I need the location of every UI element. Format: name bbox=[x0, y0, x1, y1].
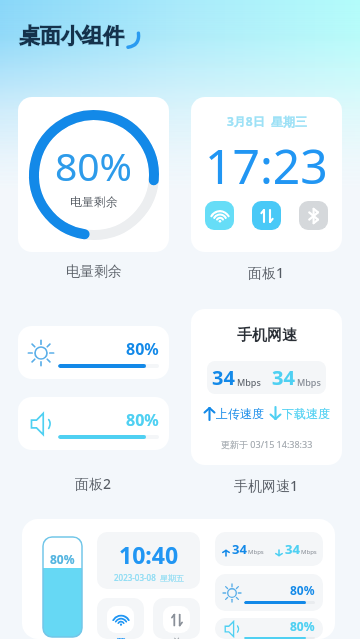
staticText: 80% bbox=[55, 139, 133, 192]
staticText: 3月8日 星期三 bbox=[227, 113, 307, 129]
button[interactable]: 80% bbox=[18, 326, 169, 379]
staticText: 80% bbox=[126, 338, 159, 360]
button[interactable]: 关 bbox=[153, 598, 200, 639]
staticText: 34 bbox=[232, 540, 247, 558]
staticText: 电量剩余 bbox=[66, 263, 122, 281]
button[interactable]: 手机网速 bbox=[191, 309, 342, 465]
staticText: 开 bbox=[116, 636, 126, 639]
button[interactable]: 3月8日 星期三 bbox=[191, 97, 342, 252]
button[interactable]: Bluetooth bbox=[299, 201, 328, 230]
staticText: 80% bbox=[290, 618, 315, 634]
staticText: 34 bbox=[212, 364, 235, 391]
button[interactable]: 80% bbox=[22, 519, 335, 639]
staticText: 面板2 bbox=[75, 474, 112, 493]
staticText: Mbps bbox=[297, 376, 321, 388]
staticText: Mbps bbox=[301, 548, 317, 556]
staticText: 上传速度 bbox=[216, 406, 264, 421]
staticText: 17:23 bbox=[205, 133, 328, 198]
staticText: 手机网速 bbox=[237, 326, 297, 345]
button[interactable]: WiFi bbox=[205, 201, 234, 230]
button[interactable]: 80% bbox=[18, 397, 169, 450]
button[interactable]: 80% bbox=[215, 574, 323, 611]
staticText: 关 bbox=[172, 636, 182, 639]
staticText: 下载速度 bbox=[282, 406, 330, 421]
staticText: Mbps bbox=[248, 548, 264, 556]
staticText: Mbps bbox=[237, 376, 261, 388]
staticText: 80% bbox=[50, 551, 75, 567]
button[interactable]: 80% bbox=[215, 618, 323, 639]
staticText: 34 bbox=[272, 364, 295, 391]
staticText: 10:40 bbox=[119, 539, 179, 570]
button[interactable]: 开 bbox=[97, 598, 144, 639]
staticText: 80% bbox=[290, 582, 315, 598]
staticText: 电量剩余 bbox=[70, 194, 118, 209]
staticText: 更新于 03/15 14:38:33 bbox=[221, 438, 313, 450]
staticText: 80% bbox=[126, 409, 159, 431]
button[interactable]: 80% bbox=[18, 97, 169, 252]
staticText: 桌面小组件 bbox=[19, 23, 124, 49]
staticText: 面板1 bbox=[248, 263, 285, 282]
staticText: 手机网速1 bbox=[234, 476, 299, 495]
staticText: 34 bbox=[285, 540, 300, 558]
staticText: 2023-03-08 星期五 bbox=[114, 572, 184, 583]
button[interactable]: Mobile data bbox=[252, 201, 281, 230]
